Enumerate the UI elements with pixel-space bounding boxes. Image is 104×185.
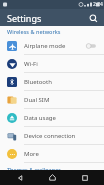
button[interactable]: Airplane mode <box>0 37 104 55</box>
button[interactable]: Data usage <box>0 109 104 127</box>
staticText: Bluetooth <box>24 78 98 86</box>
button[interactable]: Wi-Fi <box>0 55 104 73</box>
button[interactable]: Home <box>39 170 65 185</box>
staticText: Wi-Fi <box>24 60 98 68</box>
staticText: 2:24 <box>93 1 103 8</box>
button[interactable]: Recent apps <box>72 170 98 185</box>
button[interactable]: Bluetooth <box>0 73 104 91</box>
staticText: Data usage <box>24 114 98 122</box>
button[interactable]: Dual SIM <box>0 91 104 109</box>
button[interactable]: More <box>0 145 104 163</box>
staticText: Airplane mode <box>24 42 85 50</box>
staticText: Device connection <box>24 132 98 140</box>
staticText: Wireless & networks <box>7 28 61 35</box>
button[interactable]: Back <box>7 170 33 185</box>
staticText: Themes & wallpaper <box>7 166 61 170</box>
staticText: More <box>24 150 98 158</box>
button[interactable]: Device connection <box>0 127 104 145</box>
staticText: Dual SIM <box>24 96 98 104</box>
staticText: Settings <box>7 12 42 24</box>
button[interactable]: Search <box>86 11 100 25</box>
